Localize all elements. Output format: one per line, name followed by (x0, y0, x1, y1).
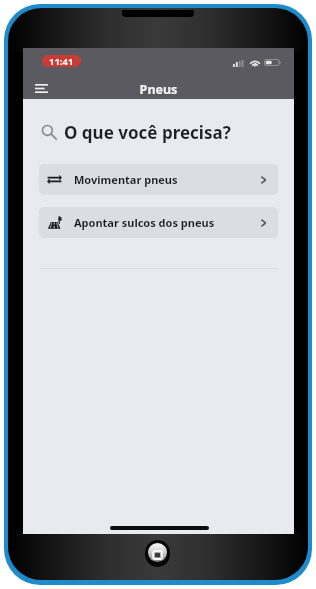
button[interactable]: Home (145, 540, 170, 567)
staticText: O que você precisa? (64, 121, 231, 144)
staticText: Apontar sulcos dos pneus (74, 215, 215, 230)
staticText: Movimentar pneus (74, 172, 178, 187)
button[interactable]: Apontar sulcos dos pneus (39, 207, 278, 238)
button[interactable]: Movimentar pneus (39, 164, 278, 195)
staticText: Pneus (23, 81, 294, 98)
staticText: 11:41 (49, 55, 74, 67)
button[interactable]: Menu (27, 76, 55, 99)
